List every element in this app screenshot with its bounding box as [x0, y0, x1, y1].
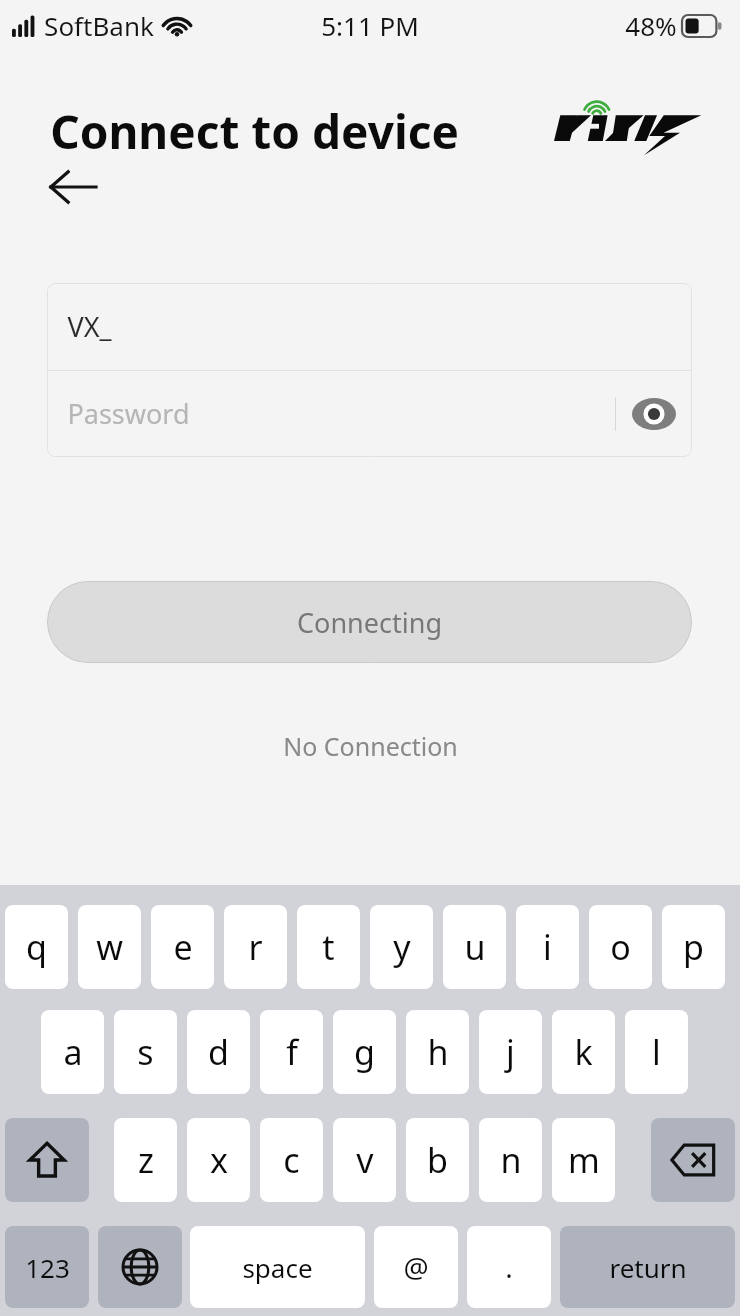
staticText: z	[138, 1137, 154, 1183]
staticText: b	[427, 1137, 448, 1183]
staticText: r	[248, 924, 263, 970]
button[interactable]: c	[260, 1118, 323, 1202]
staticText: g	[354, 1029, 375, 1075]
button[interactable]: y	[370, 905, 433, 989]
staticText: Connect to device	[50, 100, 459, 163]
staticText: y	[393, 924, 411, 970]
staticText: t	[322, 924, 335, 970]
button[interactable]: Show password	[616, 370, 692, 457]
button[interactable]: k	[552, 1010, 615, 1094]
staticText: m	[568, 1137, 600, 1183]
staticText: i	[543, 924, 552, 970]
button[interactable]: q	[5, 905, 68, 989]
staticText: j	[506, 1029, 515, 1075]
button[interactable]: m	[552, 1118, 615, 1202]
staticText: return	[609, 1250, 687, 1285]
button[interactable]: h	[406, 1010, 469, 1094]
button[interactable]: x	[187, 1118, 250, 1202]
staticText: h	[427, 1029, 449, 1075]
button[interactable]: f	[260, 1010, 323, 1094]
staticText: Password	[67, 395, 190, 432]
staticText: n	[500, 1137, 522, 1183]
staticText: a	[63, 1029, 83, 1075]
button[interactable]: g	[333, 1010, 396, 1094]
button[interactable]: v	[333, 1118, 396, 1202]
button[interactable]: Connecting	[47, 581, 692, 663]
button[interactable]: r	[224, 905, 287, 989]
staticText: d	[208, 1029, 229, 1075]
button[interactable]: p	[662, 905, 725, 989]
staticText: x	[210, 1137, 228, 1183]
button[interactable]: t	[297, 905, 360, 989]
button[interactable]: 123	[5, 1226, 89, 1308]
button[interactable]: w	[78, 905, 141, 989]
staticText: 5:11 PM	[321, 8, 419, 43]
staticText: 48%	[625, 8, 677, 43]
button[interactable]: i	[516, 905, 579, 989]
button[interactable]: Back	[36, 158, 108, 216]
button[interactable]: Password	[47, 370, 692, 457]
button[interactable]: u	[443, 905, 506, 989]
staticText: space	[242, 1250, 313, 1285]
staticText: SoftBank	[44, 8, 154, 43]
staticText: Connecting	[297, 604, 442, 641]
button[interactable]: .	[467, 1226, 551, 1308]
staticText: w	[96, 924, 123, 970]
button[interactable]: Shift	[5, 1118, 89, 1202]
button[interactable]: VX_	[47, 283, 692, 370]
staticText: l	[652, 1029, 661, 1075]
staticText: v	[356, 1137, 374, 1183]
staticText: o	[610, 924, 631, 970]
staticText: c	[283, 1137, 300, 1183]
staticText: .	[505, 1248, 513, 1286]
staticText: f	[286, 1029, 298, 1075]
button[interactable]: @	[374, 1226, 458, 1308]
button[interactable]: a	[41, 1010, 104, 1094]
staticText: @	[403, 1248, 429, 1286]
staticText: e	[173, 924, 193, 970]
staticText: No Connection	[283, 729, 458, 763]
button[interactable]: o	[589, 905, 652, 989]
button[interactable]: s	[114, 1010, 177, 1094]
button[interactable]: n	[479, 1118, 542, 1202]
button[interactable]: l	[625, 1010, 688, 1094]
button[interactable]: j	[479, 1010, 542, 1094]
staticText: k	[574, 1029, 593, 1075]
button[interactable]: e	[151, 905, 214, 989]
button[interactable]: space	[190, 1226, 365, 1308]
button[interactable]: z	[114, 1118, 177, 1202]
button[interactable]: return	[560, 1226, 735, 1308]
button[interactable]: Change keyboard	[98, 1226, 182, 1308]
staticText: q	[26, 924, 47, 970]
button[interactable]: d	[187, 1010, 250, 1094]
staticText: s	[137, 1029, 154, 1075]
button[interactable]: b	[406, 1118, 469, 1202]
staticText: u	[464, 924, 486, 970]
staticText: 123	[25, 1250, 70, 1285]
staticText: p	[683, 924, 704, 970]
button[interactable]: Backspace	[651, 1118, 735, 1202]
staticText: VX_	[67, 308, 112, 345]
